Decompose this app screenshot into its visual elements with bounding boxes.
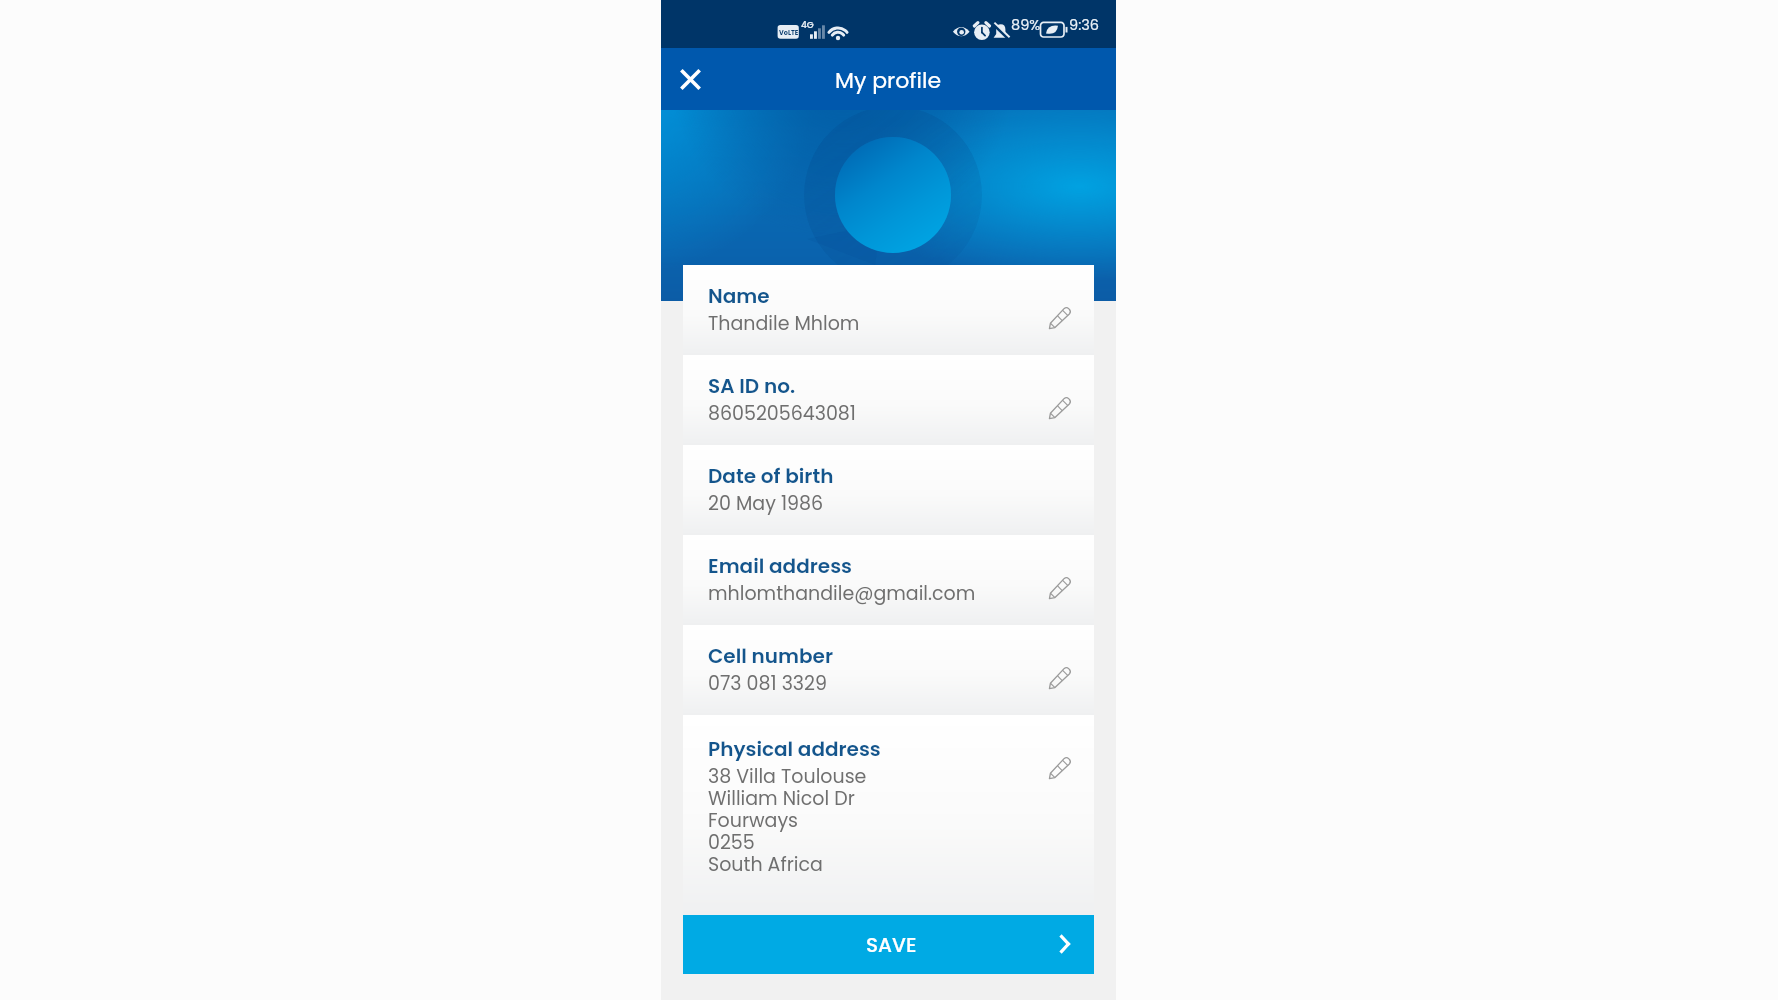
staticText: SAVE — [866, 931, 917, 959]
button[interactable]: Cell number — [683, 625, 1094, 715]
staticText: mhlomthandile@gmail.com — [708, 580, 976, 607]
staticText: 073 081 3329 — [708, 670, 827, 697]
button[interactable]: SAVE — [683, 915, 1094, 974]
staticText: Name — [708, 282, 770, 310]
button[interactable]: Close — [668, 57, 713, 102]
button[interactable]: Physical address — [683, 715, 1094, 915]
button[interactable]: Edit Physical address — [1048, 756, 1072, 780]
button[interactable]: Email address — [683, 535, 1094, 625]
staticText: 9:36 — [1069, 15, 1099, 35]
staticText: My profile — [835, 65, 942, 96]
staticText: 89% — [1011, 15, 1041, 35]
staticText: Date of birth — [708, 462, 834, 490]
staticText: 8605205643081 — [708, 400, 856, 427]
staticText: SA ID no. — [708, 372, 796, 400]
staticText: Thandile Mhlom — [708, 310, 860, 337]
button[interactable]: Edit SA ID no. — [1048, 396, 1072, 420]
button[interactable]: Name — [683, 265, 1094, 355]
staticText: VoLTE — [779, 28, 799, 37]
button[interactable]: Date of birth — [683, 445, 1094, 535]
button[interactable]: Edit Cell number — [1048, 666, 1072, 690]
staticText: 38 Villa Toulouse William Nicol Dr Fourw… — [708, 763, 867, 878]
button[interactable]: Edit Name — [1048, 306, 1072, 330]
button[interactable]: SA ID no. — [683, 355, 1094, 445]
staticText: Cell number — [708, 642, 833, 670]
staticText: Physical address — [708, 735, 881, 763]
staticText: 20 May 1986 — [708, 490, 824, 517]
staticText: 4G — [801, 19, 814, 32]
staticText: Email address — [708, 552, 852, 580]
button[interactable]: Edit Email address — [1048, 576, 1072, 600]
